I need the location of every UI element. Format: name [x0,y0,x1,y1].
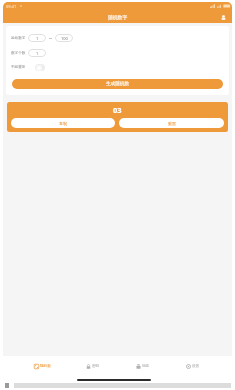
staticText: 抽签 [142,364,150,369]
button[interactable]: 复制 [11,118,115,128]
button[interactable]: 随机数 [17,356,68,376]
staticText: 1 [36,51,39,56]
button[interactable] [35,64,45,71]
staticText: 数字个数 [11,51,26,56]
staticText: 1 [36,36,39,41]
staticText: 设置 [192,364,200,369]
staticText: 03 [113,105,122,115]
button[interactable]: 1 [28,49,46,57]
button[interactable]: 重置 [119,118,224,128]
button[interactable]: 设置 [168,356,218,376]
staticText: 复制 [59,121,67,126]
button[interactable]: 抽签 [118,356,168,376]
staticText: 09:41 [6,4,17,9]
button[interactable]: History [217,11,229,23]
staticText: 不能重复 [11,65,26,70]
staticText: 生成随机数 [106,81,129,87]
button[interactable]: 100 [55,34,73,42]
staticText: 重置 [168,121,176,126]
staticText: 100 [61,36,68,41]
staticText: 随机数字 [108,14,128,20]
button[interactable]: 密码 [68,356,118,376]
button[interactable]: 1 [28,34,46,42]
button[interactable]: 生成随机数 [12,79,223,89]
staticText: 随机数 [40,364,51,369]
staticText: 起始数字 [11,36,26,41]
staticText: 密码 [92,364,100,369]
